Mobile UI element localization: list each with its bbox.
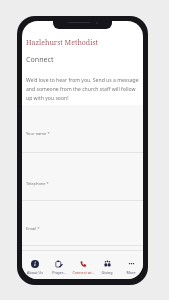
staticText: Connect xyxy=(26,54,54,64)
staticText: We'd love to hear from you. Send us a me… xyxy=(26,77,141,102)
staticText: Email * xyxy=(26,226,40,231)
button[interactable]: Prayer requests xyxy=(47,250,71,279)
staticText: About Us xyxy=(27,270,43,275)
staticText: Hazlehurst Methodist xyxy=(26,38,99,48)
staticText: Your name * xyxy=(26,131,50,136)
button[interactable]: Connect with us xyxy=(71,250,95,279)
button[interactable]: Email * xyxy=(22,200,143,246)
button[interactable]: About Us xyxy=(22,250,47,279)
button[interactable]: Giving xyxy=(95,250,119,279)
button[interactable]: Your name * xyxy=(22,105,143,153)
staticText: Giving xyxy=(101,270,113,275)
staticText: Telephone * xyxy=(26,181,49,186)
staticText: Connect wi... xyxy=(72,270,95,275)
button[interactable]: Telephone * xyxy=(22,153,143,201)
staticText: Prayer... xyxy=(52,270,66,275)
button[interactable]: More xyxy=(119,250,143,279)
staticText: More xyxy=(126,270,136,275)
